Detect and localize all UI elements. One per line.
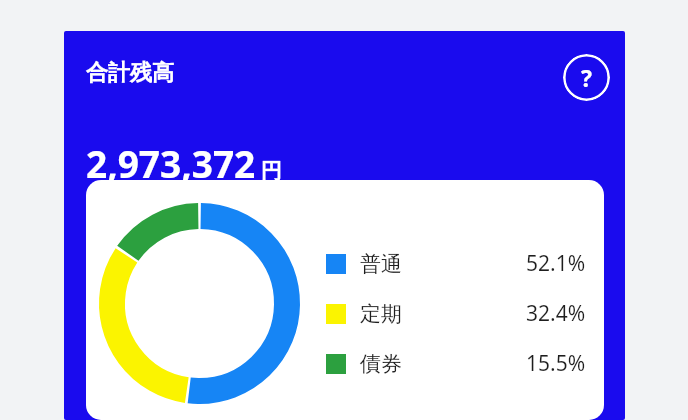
- staticText: 普通: [360, 251, 402, 277]
- button[interactable]: ヘルプ: [563, 54, 610, 101]
- staticText: 52.1%: [526, 249, 586, 278]
- button[interactable]: 定期: [326, 299, 586, 328]
- staticText: ?: [581, 62, 592, 93]
- staticText: 債券: [360, 351, 402, 377]
- button[interactable]: 債券: [326, 349, 586, 378]
- staticText: 定期: [360, 301, 402, 327]
- staticText: 2,973,372 円: [86, 138, 282, 188]
- button[interactable]: 普通: [326, 249, 586, 278]
- staticText: 合計残高: [86, 59, 174, 87]
- staticText: 15.5%: [526, 349, 586, 378]
- staticText: 32.4%: [526, 299, 586, 328]
